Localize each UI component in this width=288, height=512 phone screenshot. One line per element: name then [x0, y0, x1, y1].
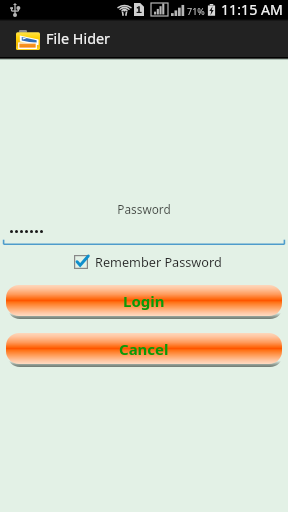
button[interactable]: Remember Password	[74, 253, 222, 270]
staticText: 11:15 AM	[221, 0, 283, 19]
button[interactable]: Login	[6, 285, 282, 316]
staticText: File Hider	[46, 29, 111, 49]
staticText: Cancel	[119, 339, 169, 359]
staticText: 71%	[187, 5, 205, 17]
staticText: Login	[123, 291, 165, 311]
staticText: Password	[0, 201, 288, 217]
staticText: Remember Password	[95, 253, 222, 270]
button[interactable]: Cancel	[6, 333, 282, 364]
